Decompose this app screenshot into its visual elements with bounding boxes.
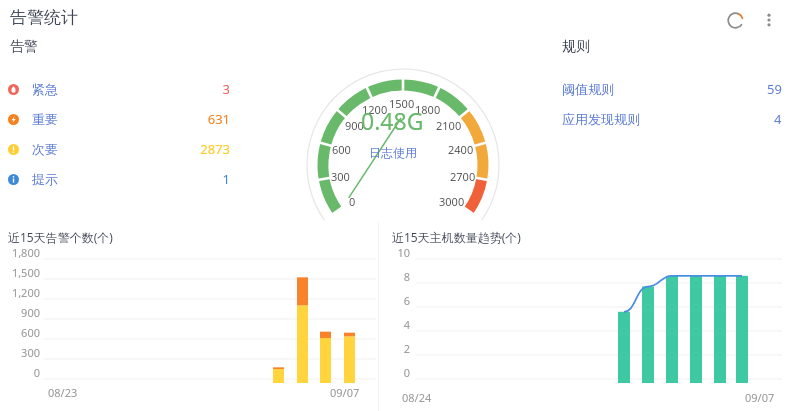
staticText: 2700: [450, 169, 476, 184]
staticText: 2873: [200, 140, 230, 158]
staticText: 2100: [436, 118, 462, 133]
staticText: 600: [21, 325, 40, 340]
staticText: 300: [331, 169, 350, 184]
staticText: 3000: [439, 194, 465, 209]
staticText: 08/23: [48, 385, 78, 400]
staticText: 告警统计: [10, 7, 78, 28]
staticText: 0: [349, 194, 356, 209]
staticText: 1200: [362, 102, 388, 117]
staticText: 09/07: [330, 385, 360, 400]
button[interactable]: 应用发现规则: [562, 108, 782, 130]
staticText: 近15天告警个数(个): [8, 229, 113, 245]
button[interactable]: More options: [755, 6, 783, 34]
staticText: 1,800: [11, 245, 40, 260]
staticText: 4: [774, 110, 782, 128]
staticText: 2400: [448, 142, 474, 157]
staticText: 阈值规则: [562, 81, 614, 97]
button[interactable]: 重要: [8, 108, 230, 130]
button[interactable]: 提示: [8, 168, 230, 190]
staticText: 1,500: [11, 265, 40, 280]
staticText: 600: [332, 142, 351, 157]
staticText: 1: [222, 170, 230, 188]
staticText: 300: [21, 345, 40, 360]
staticText: 告警: [10, 38, 38, 56]
staticText: 0.48G: [361, 105, 424, 136]
staticText: 日志使用: [369, 145, 417, 160]
staticText: 0: [403, 365, 410, 380]
staticText: 1,200: [11, 285, 40, 300]
staticText: 08/24: [402, 390, 432, 405]
staticText: 900: [345, 118, 364, 133]
button[interactable]: 紧急: [8, 78, 230, 100]
staticText: 1800: [415, 102, 441, 117]
staticText: 提示: [32, 171, 58, 187]
staticText: 重要: [32, 111, 58, 127]
staticText: 6: [403, 293, 410, 308]
staticText: 次要: [32, 141, 58, 157]
staticText: 2: [403, 341, 410, 356]
staticText: 紧急: [32, 81, 58, 97]
button[interactable]: 次要: [8, 138, 230, 160]
staticText: 应用发现规则: [562, 111, 640, 127]
staticText: 8: [403, 269, 410, 284]
staticText: 0: [33, 365, 40, 380]
staticText: 规则: [562, 38, 590, 56]
staticText: 900: [21, 305, 40, 320]
staticText: 59: [767, 80, 782, 98]
staticText: 631: [207, 110, 230, 128]
button[interactable]: 阈值规则: [562, 78, 782, 100]
staticText: 4: [403, 317, 410, 332]
button[interactable]: Refresh: [721, 6, 749, 34]
staticText: 10: [397, 245, 410, 260]
staticText: 09/07: [745, 390, 775, 405]
staticText: 1500: [389, 96, 415, 111]
staticText: 近15天主机数量趋势(个): [392, 229, 521, 245]
staticText: 3: [222, 80, 230, 98]
